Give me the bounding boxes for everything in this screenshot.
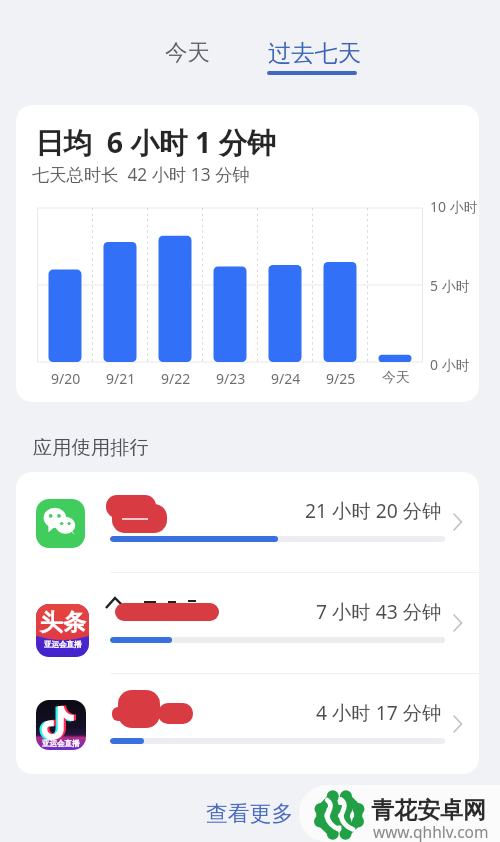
staticText: 今天	[165, 38, 210, 66]
other: Details	[453, 513, 463, 531]
other: Details	[453, 715, 463, 733]
staticText: 7 小时 43 分钟	[316, 598, 442, 624]
staticText: 亚运会直播	[42, 739, 80, 748]
button[interactable]: 头条	[16, 573, 479, 673]
staticText: 4 小时 17 分钟	[316, 699, 442, 725]
staticText: 9/22	[161, 369, 191, 388]
staticText: 应用使用排行	[33, 435, 149, 459]
staticText: 查看更多	[206, 800, 294, 827]
staticText: 头条	[40, 608, 86, 637]
button[interactable]: 21 小时 20 分钟	[16, 472, 479, 572]
staticText: 七天总时长 42 小时 13 分钟	[32, 163, 250, 187]
staticText: 0 小时	[430, 355, 470, 374]
staticText: 21 小时 20 分钟	[305, 497, 442, 523]
staticText: 日均 6 小时 1 分钟	[35, 123, 276, 162]
staticText: 9/21	[106, 369, 136, 388]
staticText: 今天	[382, 369, 410, 387]
other: Details	[453, 614, 463, 632]
staticText: 亚运会直播	[44, 640, 82, 649]
staticText: 9/23	[216, 369, 246, 388]
staticText: www.qhhlv.com	[373, 821, 489, 842]
staticText: 过去七天	[268, 39, 362, 68]
button[interactable]: 亚运会直播	[16, 674, 479, 774]
staticText: 青花安卓网	[371, 796, 486, 825]
staticText: 9/25	[326, 369, 356, 388]
button[interactable]: 查看更多	[206, 800, 294, 827]
button[interactable]: 今天	[165, 38, 210, 66]
button[interactable]: 过去七天	[265, 39, 359, 68]
staticText: 9/24	[271, 369, 301, 388]
staticText: 10 小时	[430, 197, 478, 216]
staticText: 5 小时	[430, 276, 470, 295]
staticText: 9/20	[51, 369, 81, 388]
